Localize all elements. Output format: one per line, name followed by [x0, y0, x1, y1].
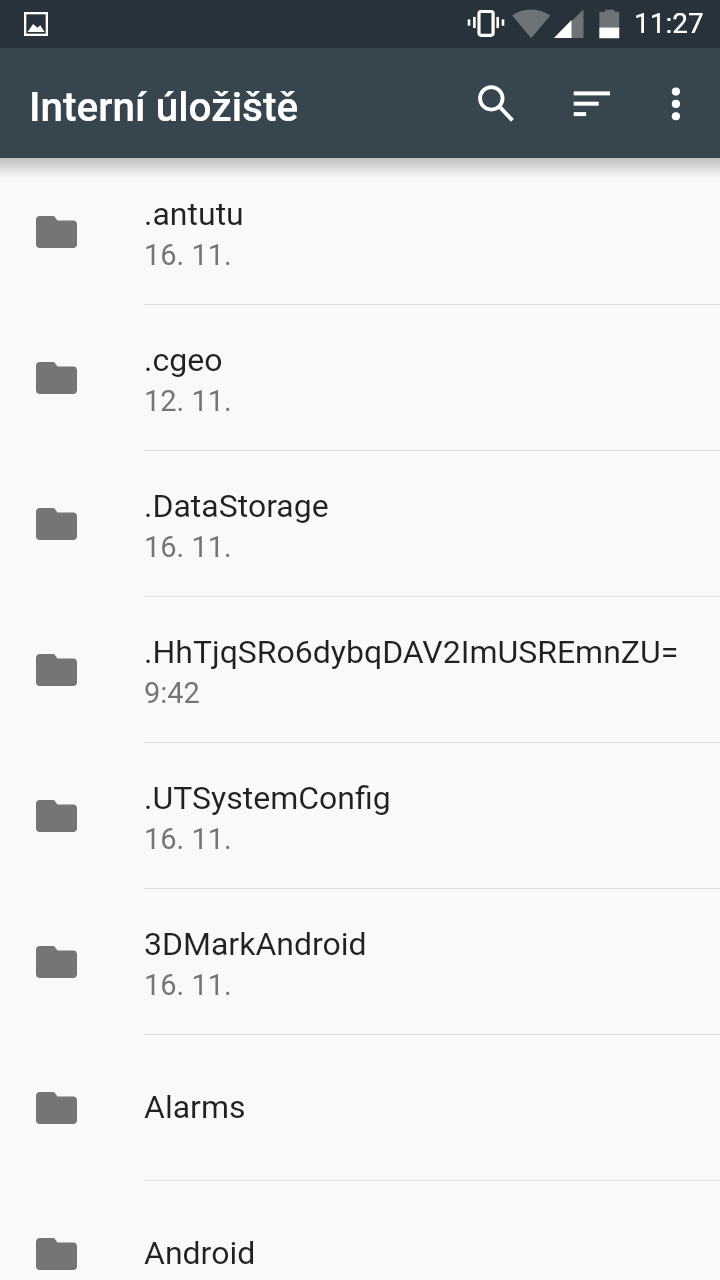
staticText: 16. 11.: [144, 968, 232, 1002]
button[interactable]: More options: [648, 62, 704, 118]
button[interactable]: .DataStorage: [0, 451, 720, 597]
staticText: .UTSystemConfig: [144, 779, 391, 817]
button[interactable]: Sort: [556, 62, 612, 118]
button[interactable]: Alarms: [0, 1035, 720, 1181]
button[interactable]: .cgeo: [0, 305, 720, 451]
button[interactable]: .HhTjqSRo6dybqDAV2ImUSREmnZU=: [0, 597, 720, 743]
button[interactable]: Search: [464, 62, 520, 118]
staticText: .DataStorage: [144, 487, 329, 525]
staticText: 16. 11.: [144, 822, 232, 856]
staticText: .HhTjqSRo6dybqDAV2ImUSREmnZU=: [144, 633, 679, 671]
staticText: Interní úložiště: [29, 83, 299, 130]
staticText: .antutu: [144, 195, 244, 233]
staticText: .cgeo: [144, 341, 223, 379]
button[interactable]: .UTSystemConfig: [0, 743, 720, 889]
staticText: 16. 11.: [144, 530, 232, 564]
button[interactable]: .antutu: [0, 159, 720, 305]
staticText: 11:27: [634, 7, 704, 40]
button[interactable]: Android: [0, 1181, 720, 1280]
staticText: 16. 11.: [144, 238, 232, 272]
staticText: 12. 11.: [144, 384, 232, 418]
staticText: 9:42: [144, 676, 200, 710]
staticText: Alarms: [144, 1088, 246, 1126]
staticText: 3DMarkAndroid: [144, 925, 367, 963]
button[interactable]: 3DMarkAndroid: [0, 889, 720, 1035]
staticText: Android: [144, 1234, 256, 1272]
